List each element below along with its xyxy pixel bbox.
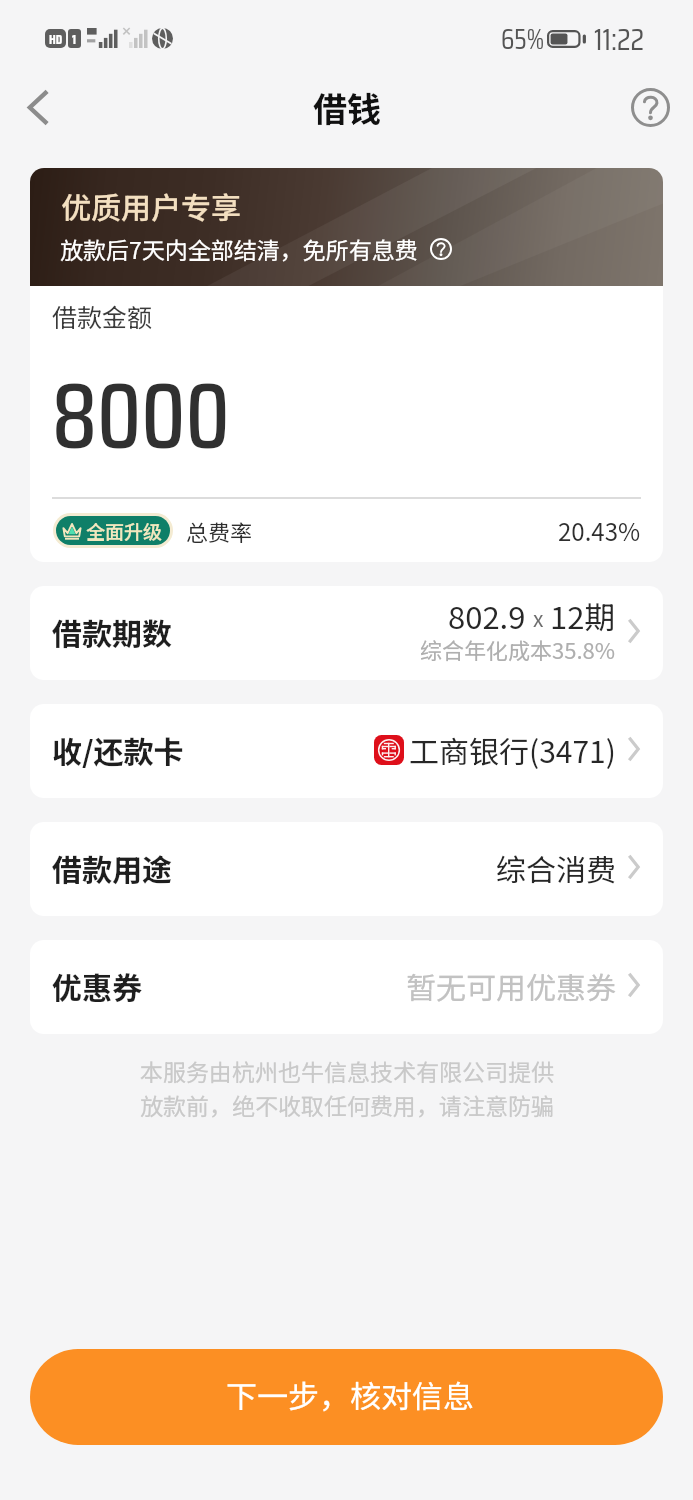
staticText: 综合消费 — [496, 846, 616, 889]
button[interactable]: 借款期数 — [30, 586, 663, 680]
button[interactable]: 收/还款卡 — [30, 704, 663, 798]
staticText: 11:22 — [594, 15, 645, 64]
staticText: 优质用户专享 — [61, 184, 241, 227]
staticText: 1 — [72, 29, 77, 48]
staticText: 借钱 — [313, 83, 381, 132]
staticText: 综合年化成本35.8% — [420, 633, 616, 665]
staticText: 借款期数 — [52, 610, 172, 653]
button[interactable]: 下一步，核对信息 — [30, 1349, 663, 1445]
staticText: 8000 — [52, 344, 230, 489]
staticText: 借款用途 — [52, 846, 172, 889]
staticText: 优惠券 — [52, 964, 142, 1007]
staticText: x — [533, 603, 544, 633]
staticText: 下一步，核对信息 — [226, 1372, 474, 1417]
staticText: 放款后7天内全部结清，免所有息费 — [60, 232, 418, 265]
staticText: 12期 — [550, 593, 616, 638]
staticText: 20.43% — [558, 513, 641, 548]
staticText: 802.9 — [448, 593, 526, 638]
staticText: HD — [49, 29, 63, 48]
staticText: 工商银行(3471) — [409, 728, 616, 771]
staticText: 收/还款卡 — [52, 728, 184, 771]
staticText: 借款金额 — [52, 298, 153, 334]
staticText: 总费率 — [186, 515, 253, 547]
button[interactable]: Back — [9, 78, 67, 136]
staticText: 放款前，绝不收取任何费用，请注意防骗 — [140, 1088, 554, 1121]
staticText: 暂无可用优惠券 — [406, 964, 616, 1007]
button[interactable]: Help — [621, 78, 679, 136]
button[interactable]: 优惠券 — [30, 940, 663, 1034]
staticText: 全面升级 — [86, 517, 163, 545]
staticText: 65% — [501, 17, 545, 61]
button[interactable]: 借款用途 — [30, 822, 663, 916]
staticText: 本服务由杭州也牛信息技术有限公司提供 — [140, 1054, 554, 1087]
